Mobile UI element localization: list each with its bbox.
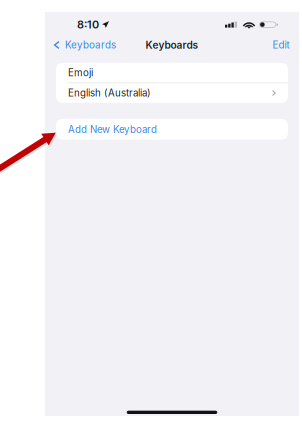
staticText: Add New Keyboard [68, 123, 157, 135]
staticText: 8:10 [77, 18, 99, 31]
staticText: Keyboards [145, 39, 198, 51]
button[interactable]: Edit [266, 36, 299, 54]
button[interactable]: Keyboards [45, 36, 122, 54]
button[interactable]: Emoji [56, 63, 288, 83]
button[interactable]: Add New Keyboard [56, 119, 288, 140]
staticText: Keyboards [65, 39, 116, 51]
staticText: Emoji [68, 67, 93, 79]
staticText: English (Australia) [68, 87, 151, 99]
button[interactable]: English (Australia) [56, 83, 288, 103]
staticText: Edit [272, 39, 289, 51]
